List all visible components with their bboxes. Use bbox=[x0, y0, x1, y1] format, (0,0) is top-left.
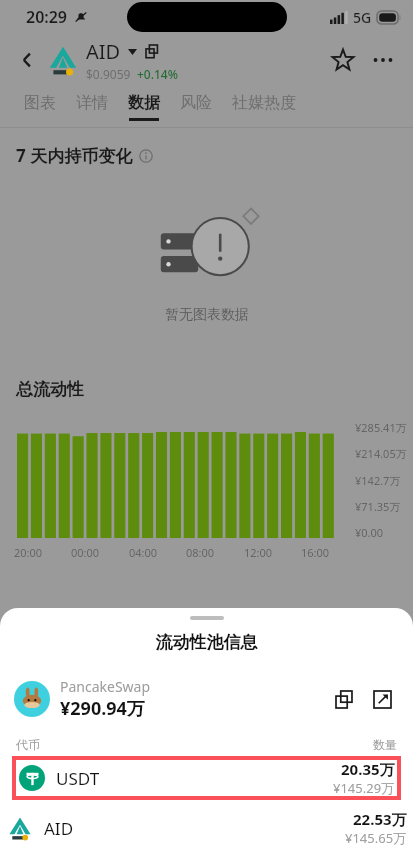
button[interactable]: PancakeSwap bbox=[0, 677, 413, 721]
staticText: AID bbox=[86, 38, 121, 65]
button[interactable]: 图表 bbox=[14, 86, 66, 128]
staticText: 社媒热度 bbox=[232, 93, 296, 113]
staticText: 代币 bbox=[16, 737, 40, 752]
staticText: 16:00 bbox=[301, 545, 330, 560]
button[interactable]: Copy bbox=[327, 682, 361, 716]
staticText: 22.53万 bbox=[353, 809, 407, 829]
staticText: ¥145.29万 bbox=[333, 779, 395, 797]
staticText: ¥290.94万 bbox=[60, 696, 145, 721]
button[interactable]: Favorite bbox=[323, 40, 363, 80]
staticText: 08:00 bbox=[186, 545, 215, 560]
staticText: 图表 bbox=[24, 93, 56, 113]
button[interactable]: More options bbox=[363, 40, 403, 80]
staticText: AID bbox=[44, 817, 74, 840]
button[interactable]: 风险 bbox=[170, 86, 222, 128]
staticText: 总流动性 bbox=[16, 379, 84, 400]
staticText: 04:00 bbox=[129, 545, 158, 560]
staticText: 风险 bbox=[180, 93, 212, 113]
button[interactable]: Back bbox=[10, 43, 44, 77]
staticText: ¥214.05万 bbox=[355, 446, 407, 461]
button[interactable]: AID bbox=[86, 38, 323, 82]
button[interactable]: AID bbox=[0, 806, 413, 850]
staticText: 详情 bbox=[76, 93, 108, 113]
staticText: 数据 bbox=[128, 93, 160, 113]
staticText: 00:00 bbox=[71, 545, 100, 560]
staticText: PancakeSwap bbox=[60, 677, 151, 696]
staticText: 20:00 bbox=[14, 545, 43, 560]
staticText: 暂无图表数据 bbox=[165, 306, 249, 324]
button[interactable]: 详情 bbox=[66, 86, 118, 128]
button[interactable]: 社媒热度 bbox=[222, 86, 306, 128]
staticText: 5G bbox=[353, 8, 372, 27]
staticText: ¥285.41万 bbox=[355, 420, 407, 435]
button[interactable]: USDT bbox=[12, 756, 401, 800]
staticText: ¥142.7万 bbox=[355, 473, 401, 488]
button[interactable]: 数据 bbox=[118, 86, 170, 128]
staticText: 20.35万 bbox=[341, 759, 395, 779]
staticText: USDT bbox=[56, 767, 100, 790]
button[interactable]: Open external link bbox=[365, 682, 399, 716]
staticText: +0.14% bbox=[137, 66, 178, 82]
staticText: 12:00 bbox=[244, 545, 273, 560]
staticText: 20:29 bbox=[26, 6, 68, 28]
staticText: 流动性池信息 bbox=[0, 632, 413, 653]
staticText: ¥71.35万 bbox=[355, 499, 401, 514]
staticText: ¥145.65万 bbox=[345, 829, 407, 847]
staticText: 7 天内持币变化 bbox=[16, 144, 133, 167]
staticText: $0.9059 bbox=[86, 66, 131, 82]
staticText: ¥0.00 bbox=[355, 525, 384, 540]
staticText: 数量 bbox=[373, 737, 397, 752]
